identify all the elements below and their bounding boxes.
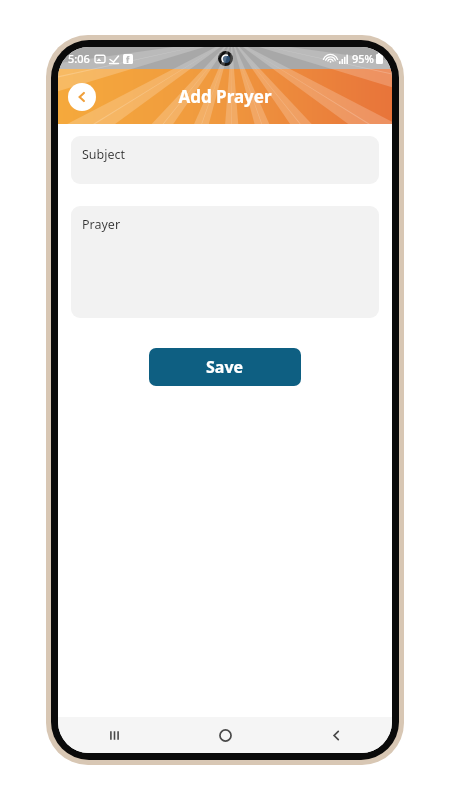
staticText: 95% — [352, 51, 374, 66]
staticText: f — [126, 54, 130, 64]
button[interactable]: Save — [149, 348, 301, 386]
staticText: Add Prayer — [178, 85, 272, 108]
button[interactable]: Recents — [58, 717, 170, 753]
button[interactable]: Home — [170, 717, 281, 753]
staticText: Subject — [82, 146, 126, 163]
staticText: Prayer — [82, 216, 121, 233]
button[interactable]: Back — [68, 83, 96, 111]
staticText: Save — [206, 356, 244, 378]
button[interactable]: Back — [281, 717, 392, 753]
button[interactable]: Subject — [71, 136, 379, 184]
staticText: 5:06 — [68, 51, 90, 66]
button[interactable]: Prayer — [71, 206, 379, 318]
